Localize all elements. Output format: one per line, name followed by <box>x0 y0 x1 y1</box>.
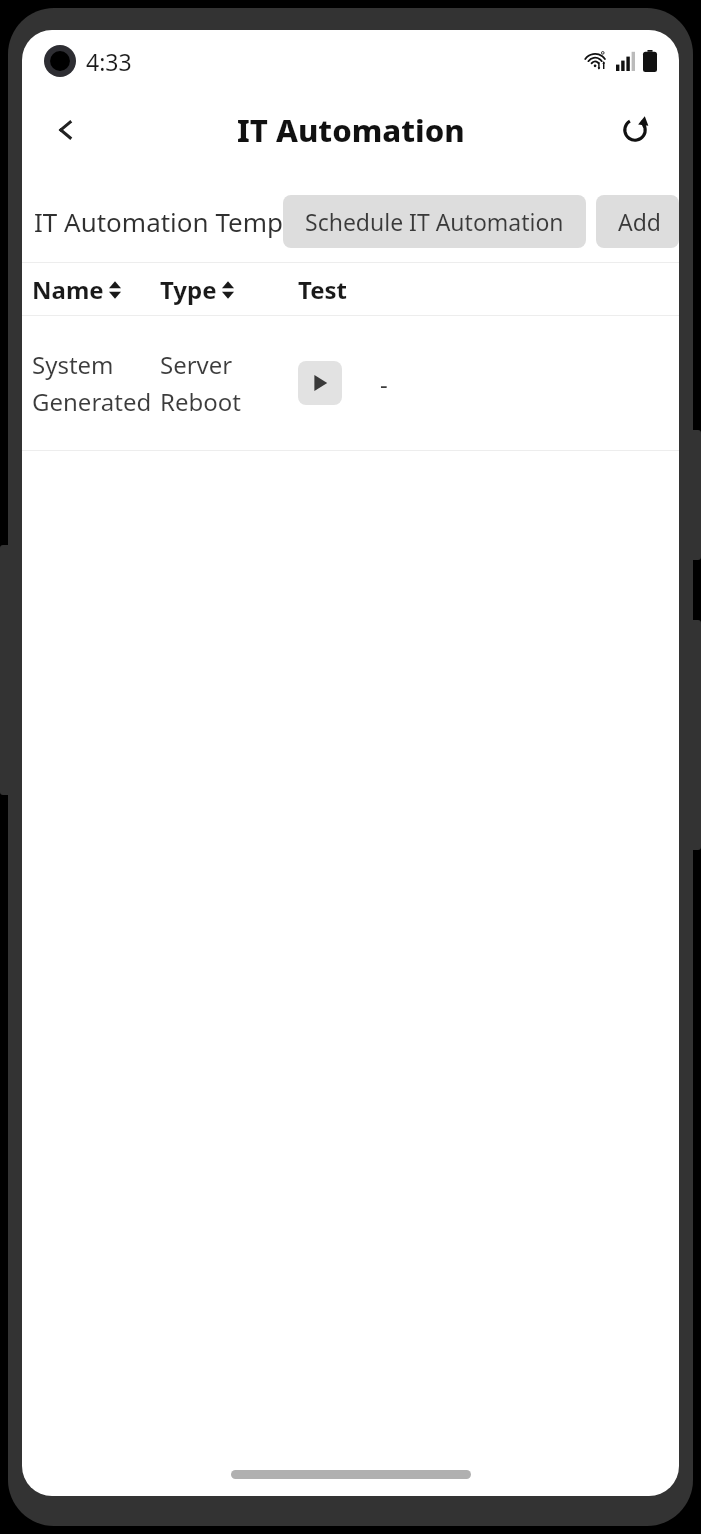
button[interactable]: Name <box>32 273 160 306</box>
staticText: Test <box>298 273 347 306</box>
button[interactable]: Back <box>42 106 90 154</box>
staticText: Name <box>32 273 104 306</box>
staticText: Server Reboot <box>160 348 298 418</box>
button[interactable]: Add <box>596 195 679 248</box>
button[interactable]: System Generated <box>22 316 679 450</box>
staticText: IT Automation Templates <box>34 204 341 239</box>
button[interactable]: Refresh <box>611 106 659 154</box>
staticText: Type <box>160 273 217 306</box>
staticText: - <box>380 367 388 400</box>
staticText: Add <box>618 206 661 237</box>
staticText: 4:33 <box>86 46 132 77</box>
button[interactable]: Run test <box>298 361 342 405</box>
staticText: IT Automation <box>237 109 465 151</box>
button[interactable]: Type <box>160 273 298 306</box>
staticText: System Generated <box>32 348 160 418</box>
button[interactable]: Schedule IT Automation <box>283 195 586 248</box>
staticText: Schedule IT Automation <box>305 206 564 237</box>
